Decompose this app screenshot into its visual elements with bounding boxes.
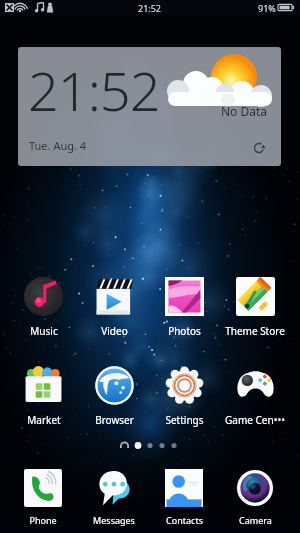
- staticText: Messages: [93, 514, 135, 526]
- button[interactable]: Music: [10, 273, 76, 341]
- button[interactable]: Refresh: [250, 139, 268, 157]
- button[interactable]: Game Cen•••: [222, 362, 288, 430]
- button[interactable]: Video: [81, 273, 147, 341]
- staticText: Video: [101, 324, 128, 338]
- staticText: Settings: [165, 413, 204, 427]
- staticText: 21:52: [28, 53, 160, 127]
- staticText: Contacts: [166, 514, 203, 526]
- button[interactable]: Browser: [81, 362, 147, 430]
- button[interactable]: Messages: [84, 466, 144, 530]
- staticText: No Data: [221, 103, 268, 119]
- button[interactable]: Settings: [151, 362, 217, 430]
- staticText: Browser: [95, 413, 134, 427]
- staticText: Music: [30, 324, 58, 338]
- staticText: Market: [27, 413, 61, 427]
- button[interactable]: Contacts: [154, 466, 214, 530]
- staticText: Game Cen•••: [225, 413, 285, 427]
- staticText: Camera: [239, 514, 272, 526]
- staticText: 21:52: [138, 2, 162, 14]
- button[interactable]: 21:52: [18, 47, 281, 166]
- staticText: 91%: [258, 2, 276, 14]
- staticText: Tue. Aug. 4: [29, 138, 87, 153]
- button[interactable]: Theme Store: [222, 273, 288, 341]
- staticText: Theme Store: [225, 324, 285, 338]
- button[interactable]: Market: [10, 362, 76, 430]
- staticText: Photos: [168, 324, 201, 338]
- button[interactable]: Phone: [13, 466, 73, 530]
- button[interactable]: Photos: [151, 273, 217, 341]
- staticText: Phone: [29, 514, 57, 526]
- button[interactable]: Camera: [225, 466, 285, 530]
